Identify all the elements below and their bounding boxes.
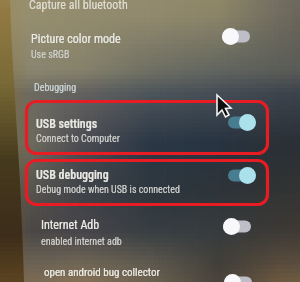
button[interactable]: Switch off xyxy=(222,28,250,45)
button[interactable]: Capture all bluetooth xyxy=(0,0,300,8)
staticText: open android bug collector xyxy=(44,266,160,279)
button[interactable]: Switch on xyxy=(228,114,256,131)
button[interactable]: USB settings xyxy=(25,100,269,155)
button[interactable]: open android bug collector xyxy=(10,258,290,282)
staticText: enabled internet adb xyxy=(41,236,122,248)
button[interactable]: Switch off xyxy=(224,274,252,282)
staticText: Picture color mode xyxy=(31,32,121,46)
staticText: Capture all bluetooth xyxy=(29,0,128,12)
staticText: Debug mode when USB is connected xyxy=(36,184,180,196)
button[interactable]: Internet Adb xyxy=(10,212,290,252)
button[interactable]: Switch on xyxy=(228,167,256,184)
staticText: Debugging xyxy=(34,82,77,94)
staticText: Connect to Computer xyxy=(36,133,120,145)
staticText: USB settings xyxy=(36,117,98,131)
button[interactable]: USB debugging xyxy=(25,159,269,206)
staticText: Internet Adb xyxy=(41,218,100,232)
button[interactable]: Picture color mode xyxy=(10,24,290,64)
button[interactable]: Switch off xyxy=(223,218,251,235)
staticText: Use sRGB xyxy=(31,49,70,61)
staticText: USB debugging xyxy=(36,168,109,182)
